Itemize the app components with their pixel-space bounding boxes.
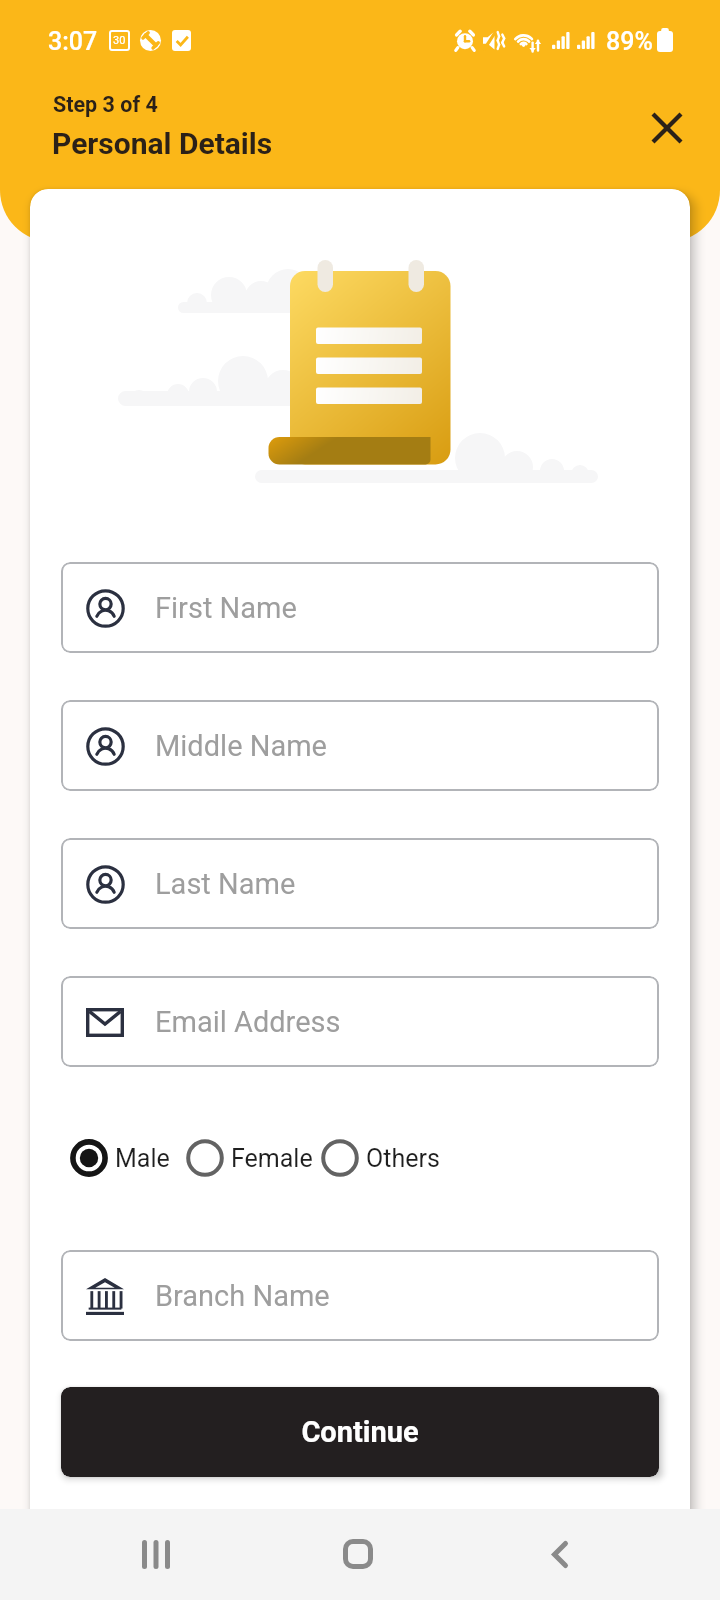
button[interactable]: Last Name	[61, 838, 659, 929]
button[interactable]: Others	[320, 1136, 440, 1180]
button[interactable]: Continue	[61, 1387, 659, 1477]
button[interactable]: Close	[638, 99, 696, 157]
staticText: 89%	[606, 27, 653, 56]
staticText: Branch Name	[155, 1279, 330, 1313]
staticText: Middle Name	[155, 729, 327, 763]
button[interactable]: Back	[528, 1522, 592, 1586]
staticText: First Name	[155, 591, 297, 625]
button[interactable]: Female	[185, 1136, 313, 1180]
staticText: Step 3 of 4	[53, 92, 158, 117]
staticText: Personal Details	[52, 126, 273, 161]
button[interactable]: Email Address	[61, 976, 659, 1067]
button[interactable]: Branch Name	[61, 1250, 659, 1341]
staticText: Last Name	[155, 867, 296, 901]
staticText: Others	[366, 1144, 440, 1173]
button[interactable]: Middle Name	[61, 700, 659, 791]
button[interactable]: Male	[69, 1136, 170, 1180]
button[interactable]: First Name	[61, 562, 659, 653]
staticText: 3:07	[48, 27, 98, 56]
button[interactable]: Home	[326, 1522, 390, 1586]
staticText: Male	[115, 1144, 170, 1173]
staticText: Continue	[301, 1415, 419, 1449]
staticText: 30	[113, 34, 126, 47]
button[interactable]: Recents	[124, 1522, 188, 1586]
staticText: Email Address	[155, 1005, 341, 1039]
staticText: Female	[231, 1144, 313, 1173]
